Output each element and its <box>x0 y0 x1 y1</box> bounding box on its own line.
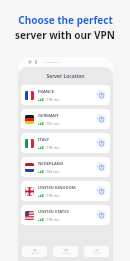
button[interactable]: Connect to NEDERLAND <box>96 162 106 172</box>
staticText: server with our VPN <box>15 28 115 42</box>
button[interactable]: UNITED KINGDOM <box>21 181 110 201</box>
staticText: NEDERLAND <box>38 161 64 167</box>
button[interactable]: Settings <box>84 246 109 257</box>
staticText: GERMANY <box>38 113 59 119</box>
button[interactable]: Connect to FRANCE <box>96 90 106 100</box>
staticText: Server Location <box>18 73 113 80</box>
staticText: FRANCE <box>38 89 55 95</box>
button[interactable]: Connect to ITALY <box>96 138 106 148</box>
staticText: 178 ms <box>46 193 59 198</box>
staticText: 184 ms <box>46 169 59 174</box>
staticText: 178 ms <box>46 97 59 102</box>
staticText: 155 ms <box>46 121 59 126</box>
button[interactable]: Servers <box>53 246 78 257</box>
staticText: UNITED STATES <box>38 209 69 215</box>
staticText: UNITED KINGDOM <box>38 185 76 191</box>
button[interactable]: ITALY <box>21 133 110 153</box>
staticText: 178 ms <box>46 145 59 150</box>
button[interactable]: UNITED STATES <box>21 205 110 225</box>
staticText: 178 ms <box>46 217 59 222</box>
button[interactable]: Connect to GERMANY <box>96 114 106 124</box>
staticText: Choose the perfect <box>18 13 113 27</box>
staticText: ITALY <box>38 137 50 143</box>
button[interactable]: GERMANY <box>21 109 110 129</box>
button[interactable]: Connect to UNITED KINGDOM <box>96 186 106 196</box>
button[interactable]: NEDERLAND <box>21 157 110 177</box>
button[interactable]: Connect to UNITED STATES <box>96 210 106 220</box>
button[interactable]: FRANCE <box>21 85 110 105</box>
button[interactable]: Home <box>22 246 47 257</box>
